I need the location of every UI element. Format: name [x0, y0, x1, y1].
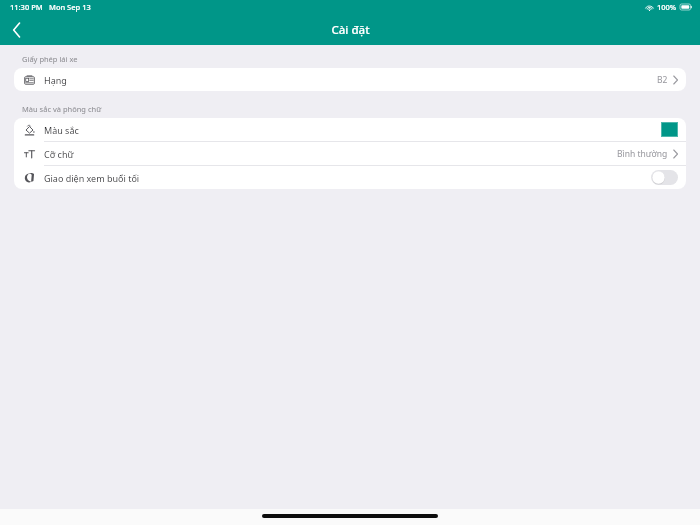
button[interactable]: Chọn màu sắc: [661, 122, 678, 137]
button[interactable]: Hạng: [14, 68, 686, 91]
staticText: Mon Sep 13: [49, 2, 91, 12]
button[interactable]: Màu sắc: [14, 118, 686, 141]
staticText: Màu sắc: [44, 124, 79, 136]
button[interactable]: Giao diện xem buổi tối: [14, 166, 686, 189]
staticText: Giao diện xem buổi tối: [44, 172, 140, 184]
staticText: 11:30 PM: [10, 2, 43, 12]
button[interactable]: Back: [0, 14, 34, 45]
staticText: Hạng: [44, 74, 67, 86]
staticText: Màu sắc và phông chữ: [22, 104, 102, 114]
staticText: 100%: [657, 2, 677, 12]
staticText: B2: [657, 74, 668, 86]
staticText: Giấy phép lái xe: [22, 54, 78, 64]
button[interactable]: Giao diện xem buổi tối: [651, 170, 678, 185]
staticText: Cỡ chữ: [44, 148, 74, 160]
staticText: Cài đặt: [331, 22, 370, 38]
staticText: Bình thường: [617, 148, 668, 160]
button[interactable]: Cỡ chữ: [14, 142, 686, 165]
